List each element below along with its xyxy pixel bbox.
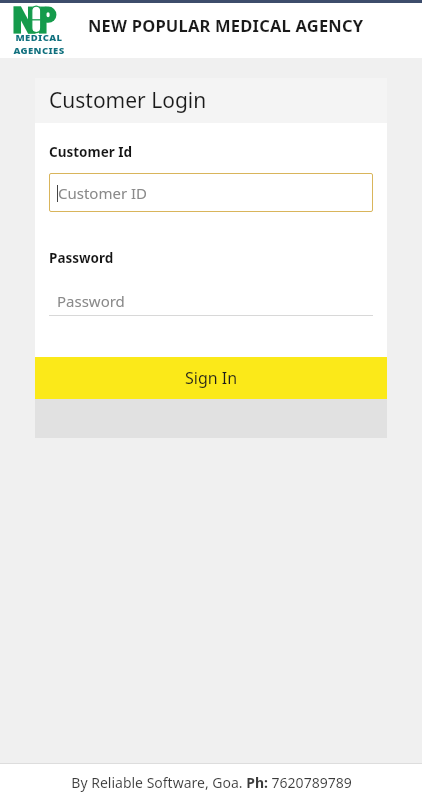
button[interactable]: Password <box>49 287 373 316</box>
staticText: By Reliable Software, Goa. Ph: 762078978… <box>71 773 352 792</box>
staticText: Customer Id <box>49 143 133 161</box>
staticText: Password <box>49 249 114 267</box>
button[interactable]: Customer ID <box>49 173 373 212</box>
button[interactable]: Sign In <box>35 357 387 399</box>
staticText: AGENCIES <box>10 44 68 57</box>
staticText: Customer Login <box>49 86 207 115</box>
staticText: MEDICAL <box>10 31 68 44</box>
staticText: NEW POPULAR MEDICAL AGENCY <box>88 14 364 36</box>
staticText: Customer ID <box>58 183 148 203</box>
staticText: Password <box>57 291 125 311</box>
staticText: Sign In <box>185 367 238 389</box>
other: NP Medical Agencies logo <box>10 5 68 57</box>
